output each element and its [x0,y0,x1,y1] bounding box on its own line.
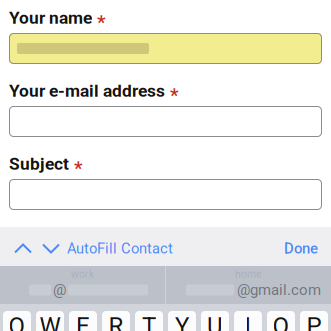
button[interactable]: Y [168,311,196,331]
button[interactable]: U [201,311,229,331]
staticText: * [97,11,105,33]
staticText: Y [175,312,189,331]
button[interactable]: Next field [36,227,62,265]
staticText: home [235,268,262,280]
staticText: work [71,268,94,280]
staticText: O [272,312,289,331]
staticText: Q [8,312,25,331]
button[interactable]: T [135,311,163,331]
button[interactable]: P [300,311,328,331]
staticText: * [74,157,82,179]
staticText: T [142,312,156,331]
staticText: R [108,312,123,331]
button[interactable]: work [0,266,165,304]
staticText: AutoFill Contact [67,240,173,257]
staticText: P [306,312,321,331]
staticText: @ [53,281,66,299]
button[interactable]: AutoFill Contact [62,226,178,267]
button[interactable]: Q [3,311,31,331]
staticText: Your name [9,8,92,28]
button[interactable]: W [36,311,64,331]
button[interactable]: R [102,311,130,331]
staticText: E [76,312,90,331]
staticText: Your e-mail address [9,81,165,101]
staticText: @gmail.com [237,281,321,299]
button[interactable]: E [69,311,97,331]
staticText: * [170,84,178,106]
staticText: Done [284,240,318,257]
staticText: Subject [9,154,69,174]
staticText: U [207,312,223,331]
button[interactable]: O [267,311,295,331]
button[interactable]: Done [272,226,318,267]
button[interactable]: I [234,311,262,331]
button[interactable]: home [166,266,331,304]
staticText: W [39,312,60,331]
button[interactable]: Previous field [10,227,36,265]
staticText: I [244,312,251,331]
